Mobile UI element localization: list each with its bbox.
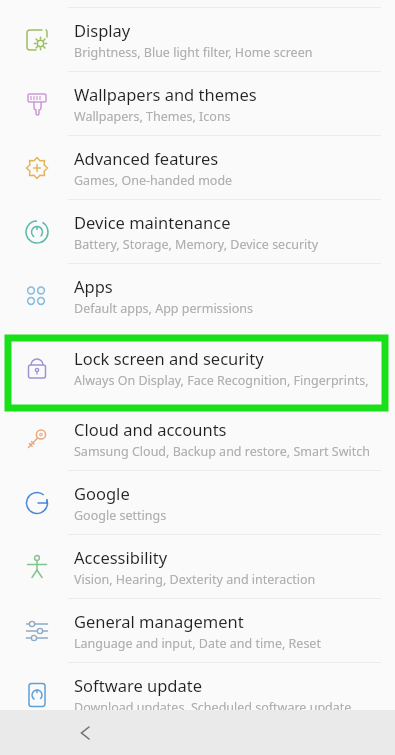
staticText: Google bbox=[74, 482, 130, 504]
button[interactable]: Wallpapers and themes bbox=[0, 72, 395, 135]
button[interactable]: General management bbox=[0, 599, 395, 662]
staticText: Display bbox=[74, 19, 131, 41]
staticText: Advanced features bbox=[74, 147, 219, 169]
staticText: Software update bbox=[74, 674, 202, 696]
button[interactable]: Accessibility bbox=[0, 535, 395, 598]
staticText: Always On Display, Face Recognition, Fin… bbox=[74, 372, 389, 389]
staticText: Wallpapers, Themes, Icons bbox=[74, 108, 231, 125]
staticText: Accessibility bbox=[74, 546, 168, 568]
button[interactable]: Back bbox=[62, 710, 110, 755]
staticText: Vision, Hearing, Dexterity and interacti… bbox=[74, 571, 316, 588]
staticText: Device maintenance bbox=[74, 211, 231, 233]
staticText: Wallpapers and themes bbox=[74, 83, 257, 105]
button[interactable]: Advanced features bbox=[0, 136, 395, 199]
staticText: Samsung Cloud, Backup and restore, Smart… bbox=[74, 443, 371, 460]
staticText: Lock screen and security bbox=[74, 347, 264, 369]
button[interactable]: Device maintenance bbox=[0, 200, 395, 263]
staticText: Google settings bbox=[74, 507, 167, 524]
button[interactable]: Software update bbox=[0, 663, 395, 726]
staticText: Cloud and accounts bbox=[74, 418, 227, 440]
button[interactable]: Lock screen and security bbox=[0, 338, 395, 398]
staticText: Default apps, App permissions bbox=[74, 300, 254, 317]
button[interactable]: Cloud and accounts bbox=[0, 407, 395, 470]
button[interactable]: Google bbox=[0, 471, 395, 534]
button[interactable]: Display bbox=[0, 8, 395, 71]
staticText: Brightness, Blue light filter, Home scre… bbox=[74, 44, 313, 61]
staticText: Download updates, Scheduled software upd… bbox=[74, 699, 352, 716]
button[interactable]: Apps bbox=[0, 264, 395, 327]
staticText: Apps bbox=[74, 275, 113, 297]
staticText: General management bbox=[74, 610, 244, 632]
staticText: Battery, Storage, Memory, Device securit… bbox=[74, 236, 319, 253]
staticText: Language and input, Date and time, Reset bbox=[74, 635, 321, 652]
staticText: Games, One-handed mode bbox=[74, 172, 233, 189]
